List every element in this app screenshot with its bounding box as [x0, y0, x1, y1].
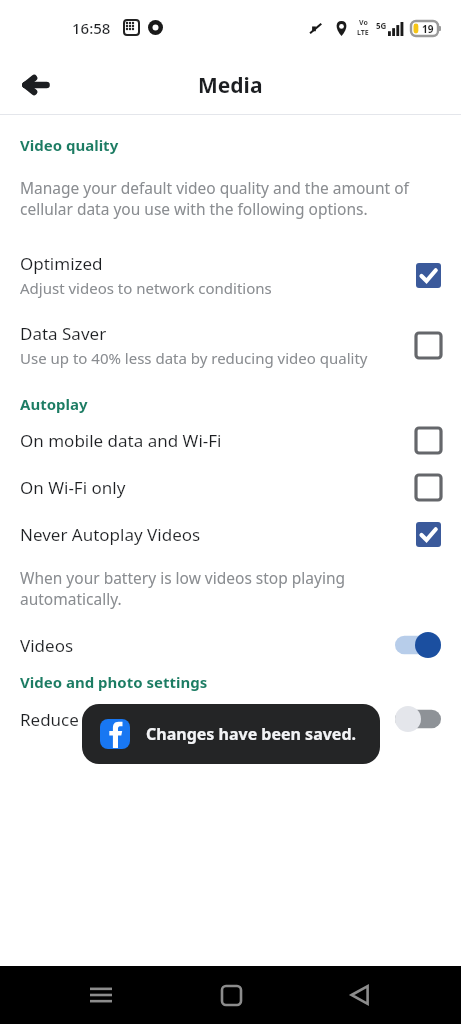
button[interactable]: Reduce 3D photo motion [0, 706, 461, 732]
staticText: 5G [376, 20, 387, 31]
staticText: Video quality [20, 135, 119, 155]
staticText: Never Autoplay Videos [20, 523, 201, 546]
staticText: Data Saver [20, 322, 107, 345]
button[interactable]: On mobile data and Wi-Fi [0, 428, 461, 453]
staticText: Manage your default video quality and th… [20, 177, 439, 220]
button[interactable]: Back [332, 967, 388, 1023]
staticText: LTE [357, 28, 369, 38]
staticText: On mobile data and Wi-Fi [20, 429, 222, 452]
button[interactable]: Data Saver [0, 322, 461, 368]
staticText: Changes have been saved. [146, 723, 357, 745]
staticText: On Wi-Fi only [20, 476, 126, 499]
button[interactable]: Changes have been saved. [82, 704, 380, 764]
button[interactable]: On Wi-Fi only [0, 475, 461, 500]
button[interactable]: Home [203, 967, 259, 1023]
button[interactable]: Recents [73, 967, 129, 1023]
button[interactable]: Optimized [0, 252, 461, 298]
staticText: Vo [359, 18, 368, 28]
staticText: Reduce 3D photo motion [20, 708, 395, 731]
button[interactable]: Never Autoplay Videos [0, 522, 461, 547]
staticText: Autoplay [20, 394, 88, 414]
button[interactable]: Back [12, 61, 60, 109]
staticText: Video and photo settings [20, 672, 208, 692]
staticText: Media [198, 71, 263, 100]
staticText: When your battery is low videos stop pla… [20, 567, 439, 610]
staticText: 19 [422, 22, 434, 36]
staticText: Optimized [20, 252, 103, 275]
staticText: Adjust videos to network conditions [20, 278, 272, 298]
staticText: Use up to 40% less data by reducing vide… [20, 348, 368, 368]
staticText: Videos [20, 634, 395, 657]
staticText: 16:58 [72, 18, 111, 38]
button[interactable]: Videos [0, 632, 461, 658]
